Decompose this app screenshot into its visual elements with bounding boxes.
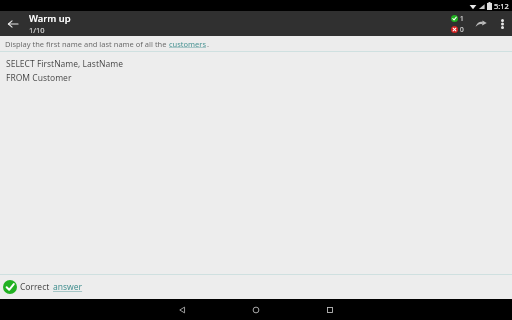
staticText: FROM Customer — [6, 72, 72, 84]
button[interactable]: Back — [0, 11, 25, 36]
button[interactable]: Home — [234, 299, 278, 320]
staticText: Correct — [20, 281, 50, 293]
staticText: Display the first name and last name of … — [5, 39, 169, 49]
staticText: SELECT FirstName, LastName — [6, 58, 123, 70]
staticText: 0 — [460, 25, 464, 34]
button[interactable]: More options — [492, 14, 512, 34]
button[interactable]: Back — [160, 299, 204, 320]
button[interactable]: Score — [449, 14, 466, 34]
staticText: Warm up — [29, 12, 71, 25]
staticText: . — [207, 39, 210, 49]
button[interactable]: answer — [53, 281, 83, 293]
staticText: customers — [169, 39, 207, 49]
button[interactable]: Share — [470, 13, 492, 35]
staticText: 5:12 — [494, 1, 509, 11]
button[interactable]: Recent apps — [308, 299, 352, 320]
button[interactable]: Display the first name and last name of … — [0, 36, 512, 51]
staticText: 1/10 — [29, 25, 45, 35]
staticText: answer — [53, 281, 83, 293]
staticText: 1 — [460, 14, 464, 23]
